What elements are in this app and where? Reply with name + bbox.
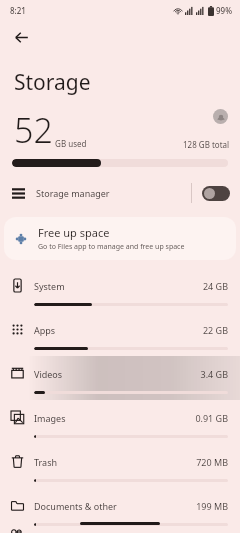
staticText: 8:21 [10, 5, 26, 16]
button[interactable]: Storage manager toggle [202, 186, 230, 201]
staticText: 720 MB [196, 456, 228, 468]
button[interactable]: Apps [0, 312, 240, 356]
staticText: Trash [34, 456, 196, 468]
staticText: System [34, 280, 202, 292]
staticText: 128 GB total [183, 139, 230, 150]
button[interactable]: System [0, 268, 240, 312]
button[interactable]: Videos [0, 356, 240, 400]
staticText: Storage [14, 68, 91, 97]
button[interactable]: Documents & other [0, 488, 240, 532]
staticText: 0.91 GB [195, 412, 228, 424]
staticText: 52 [14, 107, 53, 153]
button[interactable]: Storage manager [0, 177, 240, 209]
staticText: Free up space [38, 225, 110, 240]
staticText: Videos [34, 368, 200, 380]
staticText: 3.4 GB [200, 368, 228, 380]
button[interactable]: Back [6, 22, 36, 52]
staticText: Images [34, 412, 195, 424]
staticText: Documents & other [34, 500, 196, 512]
staticText: Storage manager [36, 187, 191, 199]
staticText: 24 GB [202, 280, 228, 292]
staticText: 22 GB [202, 324, 228, 336]
staticText: 199 MB [196, 500, 228, 512]
button[interactable]: Audio [0, 532, 240, 533]
button[interactable]: Images [0, 400, 240, 444]
staticText: GB used [53, 138, 87, 149]
button[interactable]: Account [213, 109, 228, 124]
staticText: Apps [34, 324, 202, 336]
button[interactable]: Trash [0, 444, 240, 488]
staticText: Go to Files app to manage and free up sp… [38, 242, 185, 252]
button[interactable]: Free up space [4, 217, 236, 260]
staticText: 99% [216, 5, 232, 16]
